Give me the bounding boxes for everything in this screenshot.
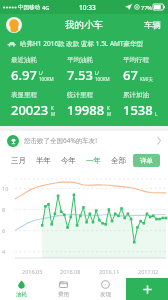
button[interactable]: 统计里程 — [56, 91, 112, 119]
staticText: 车辆 — [144, 20, 161, 31]
staticText: 10:33 — [79, 3, 96, 12]
staticText: 平均油耗 — [67, 56, 93, 64]
button[interactable]: 平均行程 — [112, 56, 168, 84]
staticText: 费用 — [58, 291, 69, 298]
staticText: 2017.02 — [138, 268, 159, 275]
button[interactable]: 油耗 — [0, 278, 42, 300]
button[interactable]: 三月 — [6, 150, 31, 171]
staticText: 2016.05 — [22, 268, 43, 275]
staticText: 油耗 — [16, 291, 27, 298]
button[interactable]: 一年 — [81, 150, 106, 171]
button[interactable]: 详单 — [133, 154, 160, 167]
staticText: 哈弗H1 2016款 改款 蓝标 1.5L AMT豪华型 — [20, 39, 144, 48]
staticText: 10 — [2, 185, 9, 192]
staticText: 2016.11 — [99, 268, 120, 275]
button[interactable]: 累计加油 — [112, 91, 168, 119]
staticText: 6.97 — [11, 66, 37, 84]
staticText: L/100KM — [95, 70, 112, 82]
staticText: 今年 — [61, 156, 76, 165]
staticText: KM/天 — [140, 76, 154, 82]
staticText: 详单 — [140, 157, 153, 165]
staticText: 全部 — [111, 156, 126, 165]
staticText: 4 — [2, 248, 6, 255]
staticText: 8 — [2, 206, 6, 213]
button[interactable]: 全部 — [106, 150, 131, 171]
staticText: L — [155, 111, 158, 117]
button[interactable]: Profile — [6, 17, 22, 33]
button[interactable]: Add — [126, 278, 168, 300]
staticText: 67 — [123, 66, 138, 84]
staticText: 半年 — [36, 156, 51, 165]
button[interactable]: 最近油耗 — [0, 56, 56, 84]
staticText: 中国移动 — [18, 4, 40, 11]
staticText: 我的小车 — [65, 19, 103, 31]
staticText: 1538 — [123, 101, 153, 119]
button[interactable]: 发现 — [84, 278, 126, 300]
staticText: KM — [107, 105, 112, 117]
staticText: 三月 — [11, 156, 26, 165]
button[interactable]: 哈弗H1 2016款 改款 蓝标 1.5L AMT豪华型 — [0, 36, 168, 51]
staticText: 平均行程 — [123, 56, 149, 64]
staticText: L/100KM — [39, 70, 56, 82]
staticText: 发现 — [100, 291, 111, 298]
button[interactable]: 费用 — [42, 278, 84, 300]
staticText: 最近油耗 — [11, 56, 37, 64]
staticText: 77% — [141, 4, 152, 11]
staticText: 一年 — [86, 156, 101, 165]
staticText: 20023 — [11, 101, 49, 119]
staticText: 统计里程 — [67, 91, 93, 99]
staticText: 7.53 — [67, 66, 93, 84]
button[interactable]: 表显里程 — [0, 91, 56, 119]
button[interactable]: 平均油耗 — [56, 56, 112, 84]
button[interactable]: 今年 — [56, 150, 81, 171]
button[interactable]: 您击败了全国64%的车友! — [0, 131, 168, 150]
staticText: 2016.08 — [60, 268, 81, 275]
staticText: KM — [51, 105, 56, 117]
staticText: 6 — [2, 227, 6, 234]
button[interactable]: 车辆 — [137, 16, 168, 35]
staticText: 19988 — [67, 101, 105, 119]
staticText: 表显里程 — [11, 91, 37, 99]
staticText: 累计加油 — [123, 91, 149, 99]
staticText: 4G — [42, 4, 50, 11]
button[interactable]: 半年 — [31, 150, 56, 171]
staticText: 您击败了全国64%的车友! — [24, 136, 98, 145]
